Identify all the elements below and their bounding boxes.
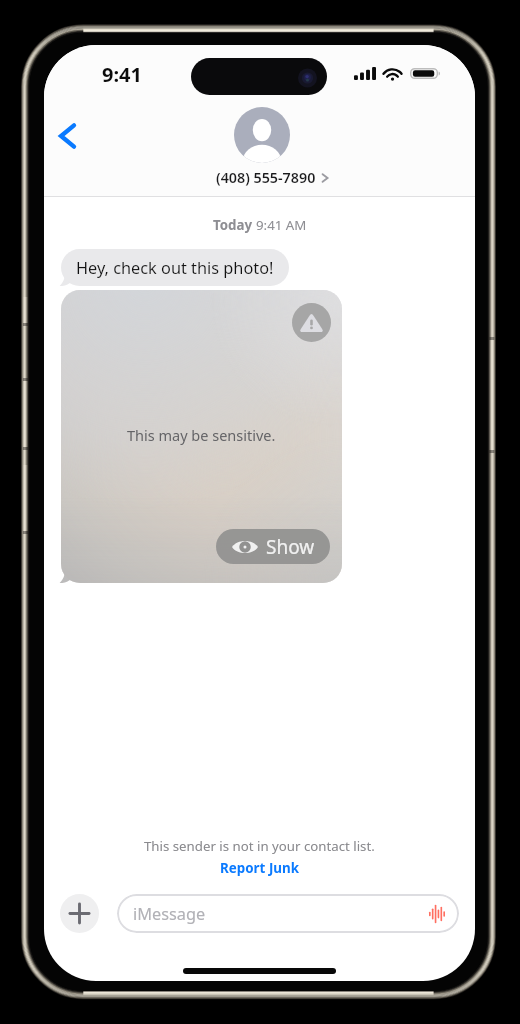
staticText: iMessage: [133, 903, 206, 925]
button[interactable]: Sensitive content warning: [292, 303, 331, 342]
staticText: 9:41 AM: [256, 216, 307, 234]
button[interactable]: iMessage: [117, 894, 459, 933]
button[interactable]: Show: [216, 529, 330, 564]
staticText: This may be sensitive.: [127, 425, 276, 445]
button[interactable]: Hey, check out this photo!: [61, 249, 289, 286]
staticText: (408) 555-7890: [216, 168, 316, 187]
staticText: Show: [266, 534, 315, 560]
button[interactable]: Back: [49, 118, 83, 154]
button[interactable]: Add attachment: [60, 894, 99, 933]
staticText: Report Junk: [220, 859, 300, 877]
staticText: Today: [213, 216, 256, 234]
staticText: Hey, check out this photo!: [76, 257, 274, 279]
button[interactable]: Record audio message: [427, 904, 447, 924]
button[interactable]: Report Junk: [212, 856, 308, 880]
button[interactable]: (408) 555-7890: [209, 105, 329, 187]
staticText: 9:41: [102, 61, 142, 88]
button[interactable]: Sensitive content warning: [61, 290, 342, 583]
staticText: This sender is not in your contact list.: [144, 837, 375, 855]
